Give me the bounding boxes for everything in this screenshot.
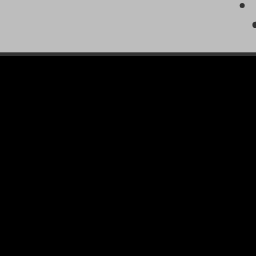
button[interactable]: More options [222, 0, 256, 52]
